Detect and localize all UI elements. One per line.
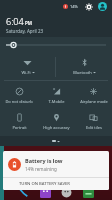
button[interactable]: Edit tiles: [75, 109, 112, 134]
button[interactable]: App: [40, 187, 51, 198]
staticText: Airplane mode: [80, 99, 108, 104]
button[interactable]: App: [83, 187, 94, 198]
button[interactable]: Battery is low: [3, 151, 109, 177]
staticText: High accuracy: [43, 125, 70, 130]
staticText: PM: [25, 20, 32, 26]
staticText: 6:04: [6, 15, 24, 27]
button[interactable]: Do not disturb: [0, 83, 38, 108]
button[interactable]: Portrait: [0, 109, 38, 134]
staticText: Edit tiles: [86, 125, 102, 130]
button[interactable]: Collapse panel: [0, 136, 112, 146]
button[interactable]: App: [18, 187, 29, 198]
staticText: Battery is low: [25, 157, 63, 164]
staticText: Do not disturb: [5, 99, 33, 104]
staticText: T-Mobile: [48, 99, 65, 104]
button[interactable]: Airplane mode: [75, 83, 112, 108]
button[interactable]: High accuracy: [38, 109, 75, 134]
button[interactable]: App: [61, 187, 72, 198]
staticText: 14%: [70, 4, 78, 9]
staticText: Saturday, April 23: [6, 28, 44, 34]
staticText: Wi-Fi: [21, 70, 31, 75]
staticText: 14% remaining: [25, 166, 57, 172]
staticText: TURN ON BATTERY SAVER: [19, 181, 70, 187]
staticText: Bluetooth: [73, 70, 92, 75]
button[interactable]: User profile: [97, 1, 108, 12]
button[interactable]: TURN ON BATTERY SAVER: [3, 178, 109, 190]
button[interactable]: Wi-Fi: [0, 54, 55, 80]
button[interactable]: T-Mobile: [38, 83, 75, 108]
button[interactable]: Settings: [83, 1, 94, 12]
button[interactable]: Brightness: [0, 39, 112, 51]
button[interactable]: Bluetooth: [56, 54, 112, 80]
staticText: Portrait: [12, 125, 27, 130]
